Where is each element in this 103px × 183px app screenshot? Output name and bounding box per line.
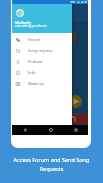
button[interactable]: Wake up: [12, 78, 72, 89]
button[interactable]: Back: [12, 125, 38, 135]
staticText: Info: [28, 70, 36, 75]
button[interactable]: Play: [69, 95, 82, 108]
staticText: mixradio@gmail.com: [15, 24, 47, 28]
button[interactable]: Podcast: [12, 56, 72, 67]
staticText: MixRadio: [15, 20, 31, 25]
button[interactable]: Song request: [12, 45, 72, 56]
staticText: Podcast: [28, 59, 43, 64]
button[interactable]: Info: [12, 67, 72, 78]
button[interactable]: Forum: [12, 34, 72, 45]
staticText: Song request: [28, 48, 53, 53]
button[interactable]: Recent apps: [63, 125, 88, 135]
staticText: Access Forum and Send Song Requests: [9, 156, 94, 172]
staticText: Forum: [28, 37, 41, 42]
button[interactable]: Home: [38, 125, 63, 135]
staticText: Wake up: [28, 81, 44, 86]
